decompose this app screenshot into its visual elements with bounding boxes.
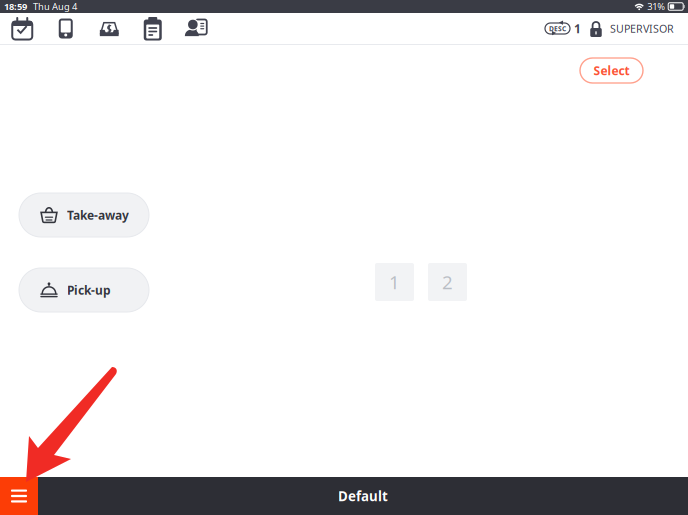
staticText: 2 <box>442 269 453 295</box>
button[interactable]: Select <box>580 58 643 83</box>
staticText: Default <box>338 487 388 505</box>
button[interactable]: Sort descending <box>544 13 581 44</box>
staticText: 1 <box>574 20 581 37</box>
staticText: Pick-up <box>67 282 111 298</box>
button[interactable]: Take-away <box>19 193 149 237</box>
button[interactable]: Mobile orders <box>44 13 87 44</box>
staticText: 18:59 <box>4 0 27 13</box>
staticText: DESC <box>549 24 566 33</box>
staticText: 1 <box>389 269 400 295</box>
button[interactable]: 2 <box>428 263 467 301</box>
button[interactable]: Customers <box>174 13 218 44</box>
staticText: Select <box>593 62 629 79</box>
staticText: 31% <box>647 0 665 13</box>
button[interactable]: SUPERVISOR <box>581 13 688 44</box>
button[interactable]: Reservations <box>0 13 44 44</box>
staticText: SUPERVISOR <box>610 21 674 36</box>
button[interactable]: Menu <box>0 477 38 515</box>
staticText: Thu Aug 4 <box>33 0 77 13</box>
button[interactable]: Cash drawer <box>87 13 131 44</box>
staticText: Take-away <box>67 207 129 223</box>
button[interactable]: Pick-up <box>19 268 149 312</box>
button[interactable]: Orders <box>131 13 174 44</box>
button[interactable]: 1 <box>375 263 414 301</box>
